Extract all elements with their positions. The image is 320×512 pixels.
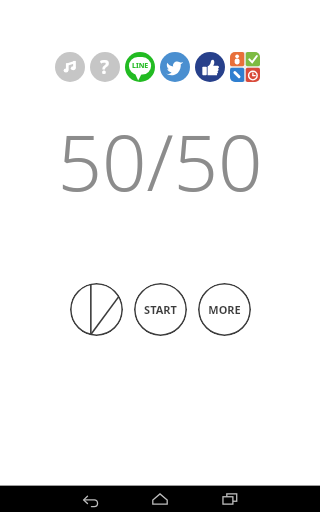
- button[interactable]: Back: [74, 486, 106, 512]
- button[interactable]: START: [134, 283, 187, 336]
- staticText: MORE: [208, 302, 241, 317]
- button[interactable]: Home: [144, 486, 176, 512]
- staticText: START: [144, 302, 177, 317]
- staticText: LINE: [132, 61, 149, 71]
- button[interactable]: Help: [90, 52, 120, 82]
- staticText: ?: [100, 54, 110, 80]
- button[interactable]: Split ratio: [70, 283, 123, 336]
- button[interactable]: More apps: [230, 52, 260, 82]
- button[interactable]: Share on LINE: [125, 52, 155, 82]
- button[interactable]: Like on Facebook: [195, 52, 225, 82]
- button[interactable]: Share on Twitter: [160, 52, 190, 82]
- button[interactable]: Music: [55, 52, 85, 82]
- staticText: 50/50: [57, 108, 263, 214]
- button[interactable]: Recent apps: [214, 486, 246, 512]
- button[interactable]: MORE: [198, 283, 251, 336]
